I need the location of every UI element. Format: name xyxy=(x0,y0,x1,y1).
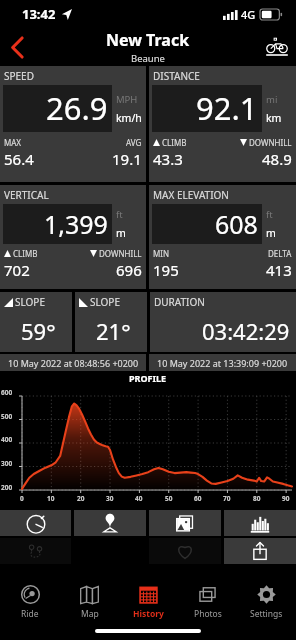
staticText: 702 xyxy=(4,260,30,280)
staticText: 56.4 xyxy=(4,149,34,169)
staticText: 10 May 2022 at 08:48:56 +0200 xyxy=(8,357,139,369)
staticText: 195 xyxy=(153,260,179,280)
staticText: m xyxy=(266,226,276,240)
button[interactable]: VERTICAL xyxy=(0,185,146,289)
staticText: 50 xyxy=(165,494,173,503)
staticText: 03:42:29 xyxy=(202,316,290,346)
staticText: km xyxy=(266,111,282,125)
staticText: MPH xyxy=(116,93,138,106)
button[interactable]: Settings xyxy=(237,578,296,620)
staticText: MAX xyxy=(4,137,22,148)
staticText: 92.1 xyxy=(196,87,258,129)
staticText: 26.9 xyxy=(46,87,108,129)
button[interactable]: Charts xyxy=(224,510,296,536)
button[interactable]: 10 May 2022 at 13:39:09 +0200 xyxy=(149,354,296,371)
staticText: SLOPE xyxy=(90,295,120,309)
staticText: DOWNHILL xyxy=(99,248,142,259)
button[interactable]: SPEED xyxy=(0,66,146,182)
staticText: 59° xyxy=(21,316,56,346)
staticText: VERTICAL xyxy=(4,188,49,202)
button[interactable]: Waypoints xyxy=(0,538,71,564)
button[interactable]: Share xyxy=(224,538,296,564)
staticText: New Track xyxy=(106,29,190,51)
staticText: Beaune xyxy=(131,52,165,65)
button[interactable]: Photos xyxy=(149,510,221,536)
staticText: DURATION xyxy=(154,295,205,309)
staticText: History xyxy=(133,608,164,620)
staticText: 4G xyxy=(241,7,256,22)
button[interactable]: Activity type: cycling xyxy=(258,28,296,66)
staticText: ft xyxy=(266,208,273,221)
staticText: MAX ELEVATION xyxy=(153,188,229,202)
staticText: 43.3 xyxy=(153,149,183,169)
staticText: Ride xyxy=(21,608,39,620)
button[interactable]: History xyxy=(119,578,178,620)
staticText: mi xyxy=(266,93,278,106)
staticText: 90 xyxy=(282,494,290,503)
button[interactable]: Map xyxy=(60,578,119,620)
staticText: DISTANCE xyxy=(153,69,200,83)
button[interactable]: Heart rate xyxy=(149,538,221,564)
button[interactable]: Ride xyxy=(0,578,60,620)
staticText: 80 xyxy=(253,494,261,503)
button[interactable]: SLOPE xyxy=(75,292,147,352)
button[interactable]: Map xyxy=(74,510,146,536)
staticText: 0 xyxy=(20,494,24,503)
staticText: 40 xyxy=(135,494,143,503)
staticText: AVG xyxy=(126,137,142,148)
staticText: 19.1 xyxy=(112,149,142,169)
staticText: 600 xyxy=(1,388,13,397)
staticText: Settings xyxy=(250,608,283,620)
staticText: 500 xyxy=(1,412,13,421)
staticText: CLIMB xyxy=(13,248,38,259)
staticText: Map xyxy=(81,608,99,620)
staticText: CLIMB xyxy=(162,137,187,148)
staticText: ft xyxy=(116,208,123,221)
staticText: DOWNHILL xyxy=(249,137,292,148)
staticText: 300 xyxy=(1,459,13,468)
button[interactable]: 10 May 2022 at 08:48:56 +0200 xyxy=(0,354,146,371)
staticText: 20 xyxy=(77,494,85,503)
staticText: 13:42 xyxy=(22,5,56,23)
button[interactable]: DURATION xyxy=(150,292,296,352)
button[interactable]: DISTANCE xyxy=(149,66,296,182)
staticText: SPEED xyxy=(4,69,34,83)
staticText: km/h xyxy=(116,111,142,125)
staticText: 70 xyxy=(223,494,231,503)
staticText: 200 xyxy=(1,483,13,492)
staticText: SLOPE xyxy=(15,295,45,309)
staticText: DELTA xyxy=(268,248,292,259)
staticText: 21° xyxy=(96,316,131,346)
staticText: 60 xyxy=(194,494,202,503)
staticText: 413 xyxy=(266,260,292,280)
button[interactable]: Photos xyxy=(178,578,237,620)
button[interactable]: Back xyxy=(0,28,34,66)
staticText: m xyxy=(116,226,126,240)
staticText: Photos xyxy=(194,608,222,620)
staticText: MIN xyxy=(153,248,170,259)
button[interactable]: SLOPE xyxy=(0,292,72,352)
staticText: 400 xyxy=(1,435,13,444)
button[interactable]: MAX ELEVATION xyxy=(149,185,296,289)
staticText: 48.9 xyxy=(262,149,292,169)
button[interactable]: Activity details xyxy=(0,510,71,536)
staticText: 608 xyxy=(215,207,258,241)
staticText: 1,399 xyxy=(44,207,108,241)
staticText: 696 xyxy=(116,260,142,280)
staticText: 30 xyxy=(106,494,114,503)
staticText: PROFILE xyxy=(129,372,167,384)
staticText: 10 xyxy=(47,494,55,503)
staticText: 10 May 2022 at 13:39:09 +0200 xyxy=(157,357,288,369)
